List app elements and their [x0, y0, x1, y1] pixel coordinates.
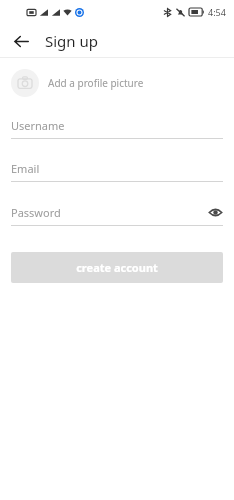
button[interactable]: Username	[11, 118, 223, 139]
staticText: 4:54	[208, 6, 226, 18]
button[interactable]: Back	[6, 26, 36, 56]
staticText: Sign up	[45, 31, 98, 51]
staticText: Password	[11, 205, 207, 220]
staticText: Email	[11, 161, 223, 176]
button[interactable]: Show password	[207, 204, 223, 220]
button[interactable]: Email	[11, 161, 223, 182]
staticText: create account	[76, 260, 158, 275]
button[interactable]: create account	[11, 252, 223, 283]
staticText: Add a profile picture	[48, 76, 144, 90]
button[interactable]: Password	[11, 204, 223, 226]
staticText: Username	[11, 118, 223, 133]
button[interactable]: Add a profile picture	[11, 69, 223, 97]
